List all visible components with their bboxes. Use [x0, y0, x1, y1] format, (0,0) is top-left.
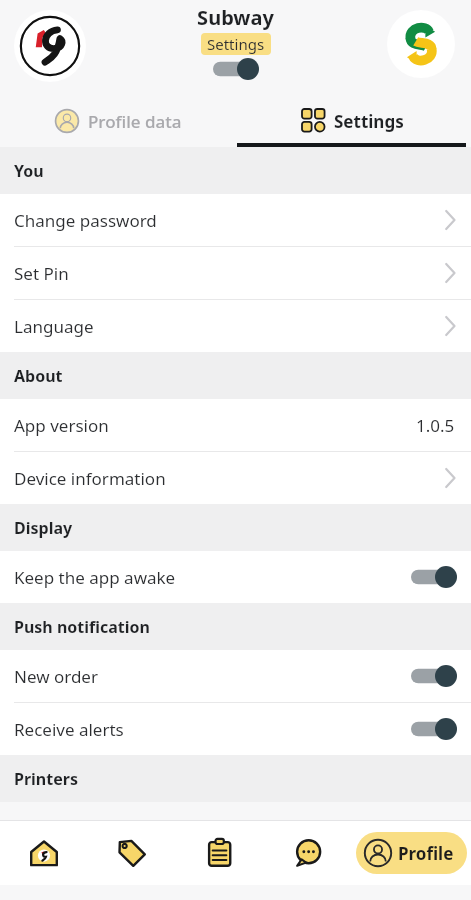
staticText: Settings — [334, 110, 404, 133]
button[interactable]: Offers — [88, 821, 176, 885]
staticText: Display — [14, 517, 73, 539]
staticText: App version — [14, 414, 416, 437]
button[interactable]: Settings — [235, 95, 471, 147]
staticText: 1.0.5 — [416, 414, 455, 437]
staticText: Keep the app awake — [14, 566, 411, 589]
staticText: Set Pin — [14, 262, 445, 285]
button[interactable]: Chat — [264, 821, 352, 885]
button[interactable]: Keep the app awake — [0, 551, 471, 603]
staticText: Language — [14, 315, 445, 338]
staticText: Printers — [14, 768, 78, 790]
button[interactable]: Subway brand — [387, 10, 455, 78]
staticText: Subway — [197, 4, 274, 31]
staticText: New order — [14, 665, 411, 688]
staticText: Profile data — [88, 110, 182, 133]
staticText: Profile — [398, 842, 454, 865]
button[interactable]: Device information — [0, 452, 471, 504]
button[interactable]: Profile data — [0, 95, 235, 147]
button[interactable]: Language — [0, 300, 471, 352]
button[interactable]: Restaurant logo — [14, 10, 86, 82]
staticText: About — [14, 365, 63, 387]
staticText: You — [14, 160, 44, 182]
button[interactable]: Toggle store open — [213, 58, 259, 80]
button[interactable]: Orders — [176, 821, 264, 885]
button[interactable]: Receive alerts — [0, 703, 471, 755]
staticText: Device information — [14, 467, 445, 490]
button[interactable]: Home — [0, 821, 88, 885]
button[interactable]: Change password — [0, 194, 471, 246]
staticText: Push notification — [14, 616, 150, 638]
button[interactable]: New order — [0, 650, 471, 702]
button[interactable]: Profile — [356, 832, 467, 874]
button[interactable]: App version — [0, 399, 471, 451]
button[interactable]: Set Pin — [0, 247, 471, 299]
staticText: Receive alerts — [14, 718, 411, 741]
staticText: Change password — [14, 209, 445, 232]
staticText: Settings — [207, 34, 265, 54]
